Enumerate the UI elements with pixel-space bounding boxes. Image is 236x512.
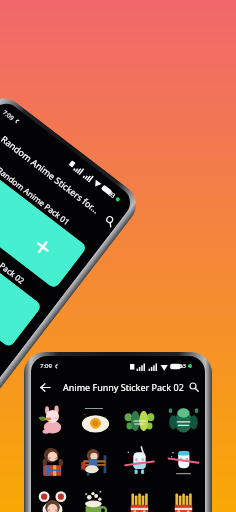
button[interactable] xyxy=(0,215,43,348)
button[interactable]: Search xyxy=(186,379,202,395)
button[interactable] xyxy=(161,440,205,482)
staticText: Random Anime Stickers for… xyxy=(0,133,102,216)
staticText: Random Anime Pack 01 xyxy=(0,140,103,251)
staticText: 7:09 xyxy=(1,108,15,122)
button[interactable] xyxy=(117,398,161,440)
staticText: Random Anime Pack 02 xyxy=(0,199,58,310)
staticText: 63 xyxy=(107,189,117,200)
button[interactable] xyxy=(0,157,88,290)
button[interactable] xyxy=(117,440,161,482)
staticText: Random Anime Pack 03 xyxy=(0,258,13,369)
button[interactable] xyxy=(161,482,205,512)
staticText: 63 xyxy=(179,362,186,370)
button[interactable] xyxy=(31,482,74,512)
button[interactable] xyxy=(117,482,161,512)
button[interactable] xyxy=(74,482,117,512)
button[interactable]: Back xyxy=(36,378,54,396)
button[interactable] xyxy=(161,398,205,440)
staticText: Anime Funny Sticker Pack 02 xyxy=(63,381,184,393)
staticText: 7:09 xyxy=(40,362,52,370)
button[interactable] xyxy=(74,440,117,482)
button[interactable] xyxy=(31,398,74,440)
button[interactable]: Search xyxy=(98,208,122,232)
button[interactable] xyxy=(74,398,117,440)
button[interactable] xyxy=(31,440,74,482)
